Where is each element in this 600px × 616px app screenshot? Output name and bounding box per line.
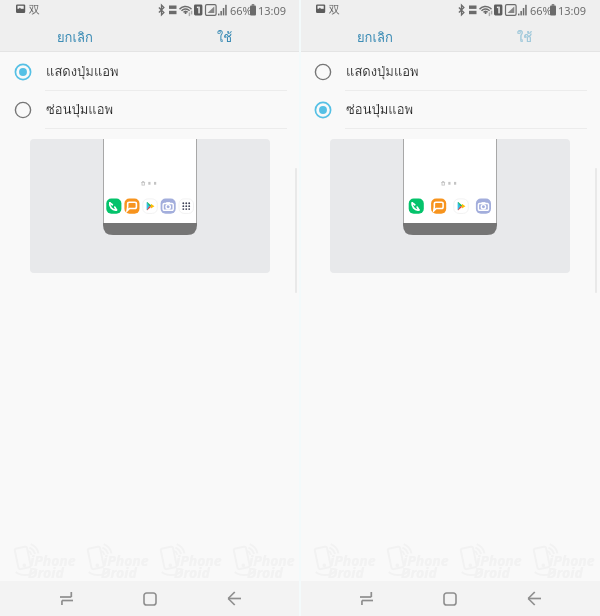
staticText: Droid [401,563,437,582]
button[interactable]: Recents [24,581,108,616]
button[interactable]: ใช้ [450,22,600,52]
button[interactable]: ยกเลิก [300,22,450,52]
staticText: 66% [230,3,252,18]
staticText: 双 [29,3,40,17]
staticText: ซ่อนปุ่มแอพ [46,99,114,120]
button[interactable]: Home [108,581,192,616]
staticText: ยกเลิก [357,27,393,48]
button[interactable]: ซ่อนปุ่มแอพ [300,91,600,128]
staticText: ยกเลิก [57,27,93,48]
staticText: แสดงปุ่มแอพ [346,61,419,82]
button[interactable]: Home [408,581,492,616]
staticText: แสดงปุ่มแอพ [46,61,119,82]
staticText: ใช้ [517,27,533,48]
button[interactable]: ใช้ [150,22,300,52]
staticText: Droid [547,563,583,582]
staticText: Droid [101,563,137,582]
staticText: ซ่อนปุ่มแอพ [346,99,414,120]
button[interactable]: แสดงปุ่มแอพ [0,53,300,90]
staticText: 66% [530,3,552,18]
button[interactable]: ซ่อนปุ่มแอพ [0,91,300,128]
button[interactable]: ยกเลิก [0,22,150,52]
staticText: 13:09 [258,3,287,18]
button[interactable]: Back [192,581,276,616]
button[interactable]: แสดงปุ่มแอพ [300,53,600,90]
staticText: Droid [247,563,283,582]
button[interactable]: Back [492,581,576,616]
staticText: Droid [328,563,364,582]
button[interactable]: Recents [324,581,408,616]
staticText: 13:09 [558,3,587,18]
staticText: 双 [329,3,340,17]
staticText: Droid [474,563,510,582]
staticText: Droid [174,563,210,582]
staticText: Droid [28,563,64,582]
staticText: ใช้ [217,27,233,48]
